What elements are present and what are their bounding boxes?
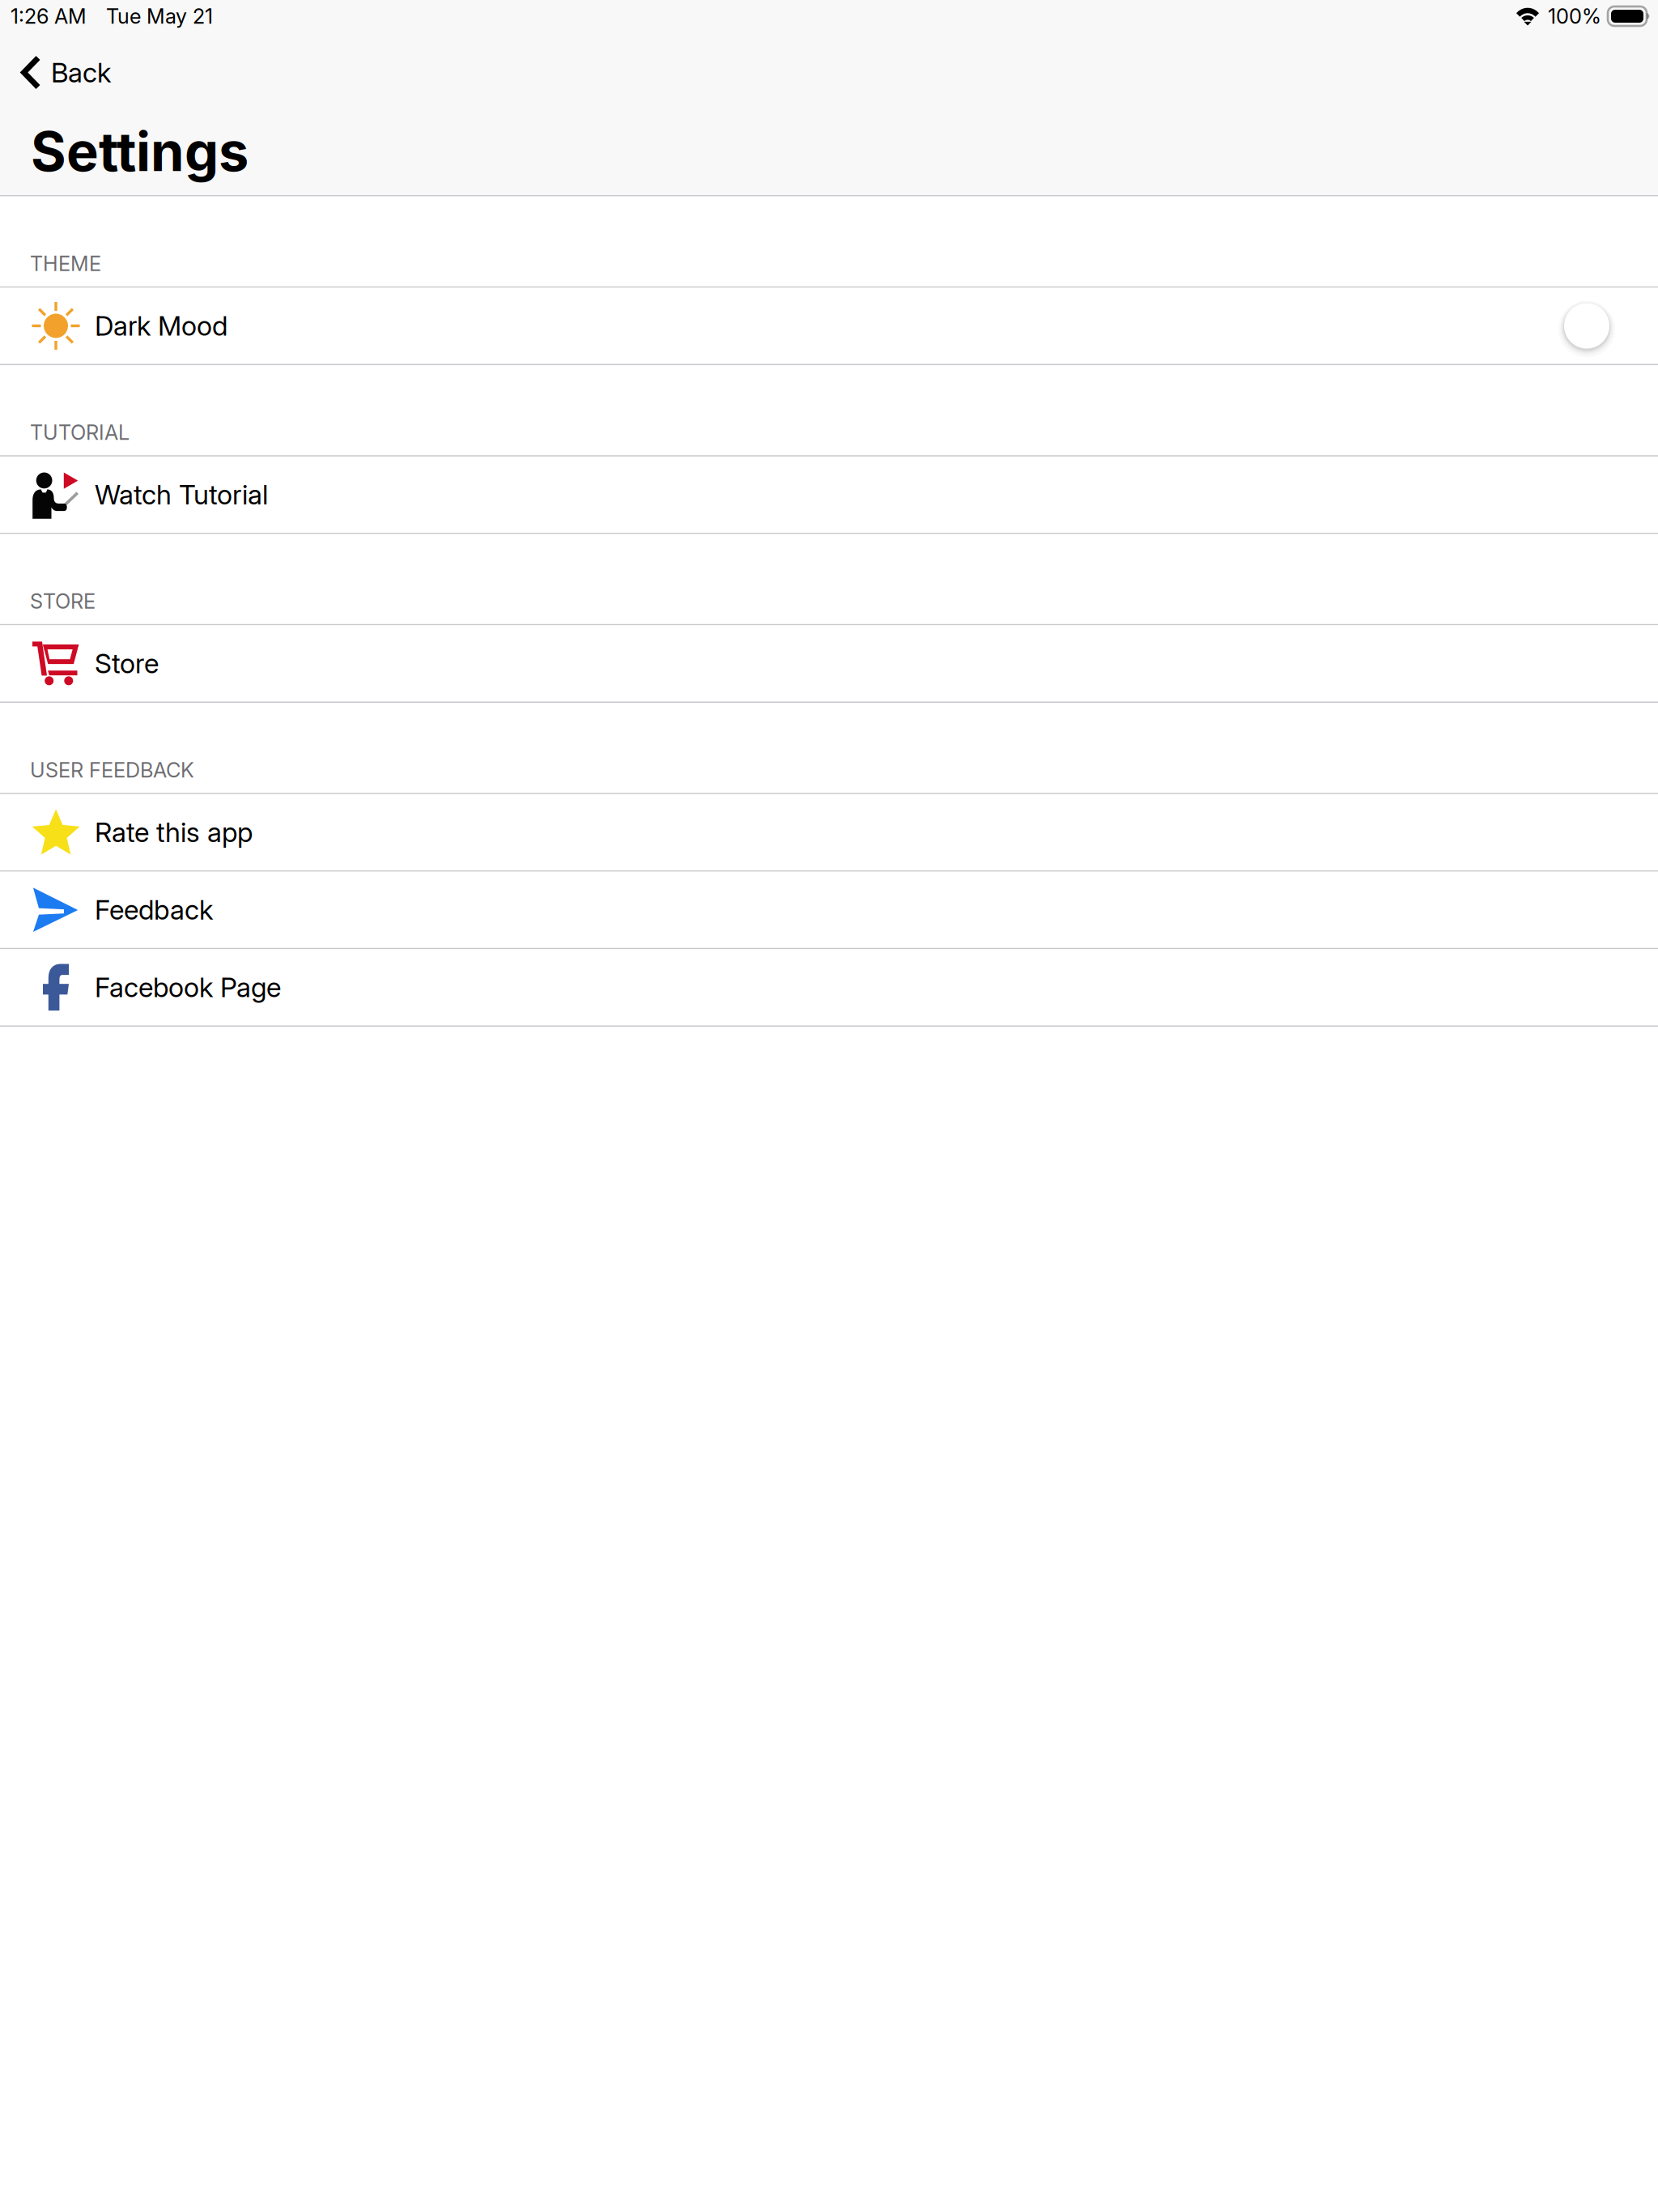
staticText: Rate this app: [95, 816, 253, 849]
button[interactable]: Back: [0, 37, 129, 108]
button[interactable]: Dark Mood: [0, 288, 1658, 364]
staticText: USER FEEDBACK: [30, 758, 194, 782]
staticText: Facebook Page: [95, 971, 281, 1004]
staticText: TUTORIAL: [30, 420, 130, 445]
button[interactable]: Watch Tutorial: [0, 457, 1658, 533]
button[interactable]: Store: [0, 625, 1658, 702]
staticText: Feedback: [95, 893, 213, 926]
staticText: Watch Tutorial: [95, 478, 268, 511]
staticText: Store: [95, 647, 159, 680]
button[interactable]: Rate this app: [0, 794, 1658, 870]
staticText: Settings: [31, 119, 249, 184]
staticText: 100%: [1548, 4, 1601, 29]
staticText: THEME: [30, 251, 101, 276]
staticText: Back: [51, 56, 111, 89]
button[interactable]: Facebook Page: [0, 949, 1658, 1025]
staticText: STORE: [30, 589, 96, 614]
staticText: Dark Mood: [95, 310, 227, 342]
staticText: 1:26 AM: [11, 4, 87, 29]
staticText: Tue May 21: [106, 4, 213, 29]
button[interactable]: Feedback: [0, 872, 1658, 948]
